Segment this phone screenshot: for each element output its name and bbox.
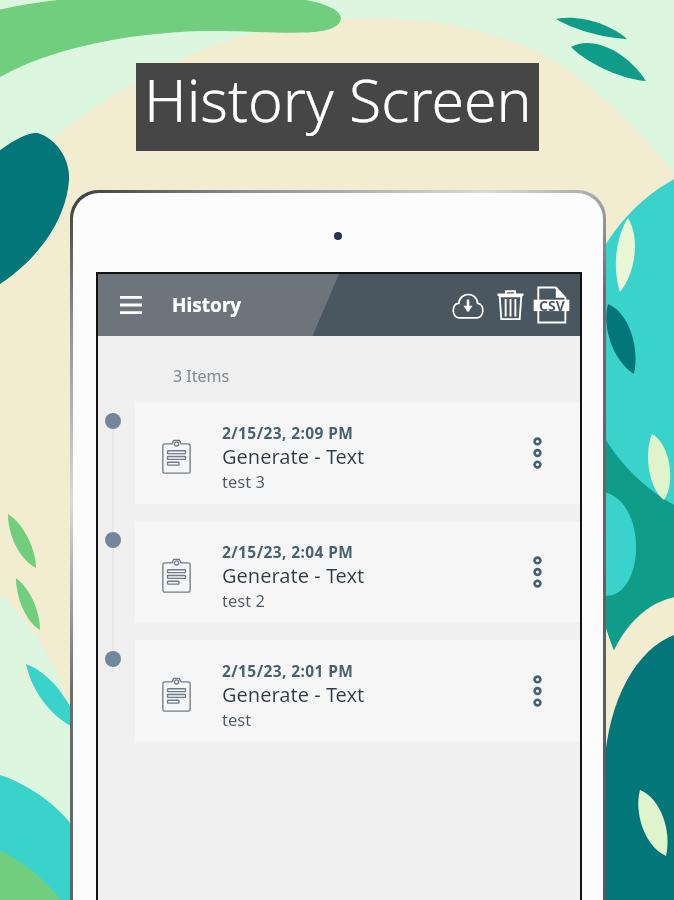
staticText: Generate - Text [222,562,365,589]
button[interactable]: 2/15/23, 2:04 PM [135,521,580,623]
button[interactable]: Download [446,283,490,327]
staticText: Generate - Text [222,443,365,470]
button[interactable]: More options [495,402,580,504]
staticText: 2/15/23, 2:09 PM [222,422,354,443]
staticText: 3 Items [173,365,230,387]
staticText: History Screen [144,59,532,139]
button[interactable]: More options [495,640,580,742]
button[interactable]: Delete all [490,285,530,325]
staticText: test 3 [222,470,265,492]
staticText: test [222,708,252,730]
staticText: 2/15/23, 2:01 PM [222,660,354,681]
button[interactable]: Export CSV [530,284,572,326]
staticText: test 2 [222,589,265,611]
button[interactable]: More options [495,521,580,623]
button[interactable]: 2/15/23, 2:09 PM [135,402,580,504]
staticText: 2/15/23, 2:04 PM [222,541,354,562]
staticText: History [172,292,242,318]
button[interactable]: 2/15/23, 2:01 PM [135,640,580,742]
staticText: Generate - Text [222,681,365,708]
button[interactable]: Menu [112,286,150,324]
staticText: CSV [539,296,565,315]
